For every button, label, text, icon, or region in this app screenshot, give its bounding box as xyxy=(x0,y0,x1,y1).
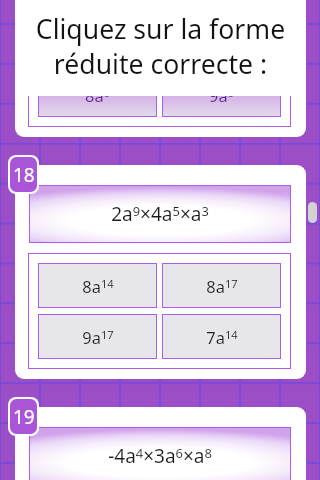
button[interactable]: 8a6 xyxy=(38,72,157,117)
staticText: 2a9×4a5×a3 xyxy=(111,201,209,227)
staticText: 6a6 xyxy=(85,33,110,55)
button[interactable]: 6a6 xyxy=(38,21,157,66)
staticText: 18 xyxy=(13,162,35,188)
staticText: 8a14 xyxy=(82,275,114,297)
staticText: 7a14 xyxy=(206,326,238,348)
staticText: Cliquez sur la forme réduite correcte : xyxy=(25,11,296,81)
button[interactable]: -4a4×3a6×a8 xyxy=(29,427,291,480)
button[interactable]: 8a14 xyxy=(38,263,157,308)
staticText: 9a17 xyxy=(82,326,114,348)
staticText: 8a17 xyxy=(206,275,238,297)
button[interactable]: 9a8 xyxy=(162,72,281,117)
staticText: 7a8 xyxy=(209,33,234,55)
staticText: 9a8 xyxy=(209,84,234,106)
staticText: 19 xyxy=(13,404,35,430)
button[interactable]: 8a17 xyxy=(162,263,281,308)
button[interactable]: 7a8 xyxy=(162,21,281,66)
button[interactable]: 9a17 xyxy=(38,314,157,359)
button[interactable]: 18 xyxy=(10,157,37,192)
staticText: 8a6 xyxy=(85,84,110,106)
staticText: -4a4×3a6×a8 xyxy=(108,443,212,469)
button[interactable]: 19 xyxy=(10,399,37,434)
button[interactable]: 7a14 xyxy=(162,314,281,359)
button[interactable]: 2a9×4a5×a3 xyxy=(29,185,291,243)
